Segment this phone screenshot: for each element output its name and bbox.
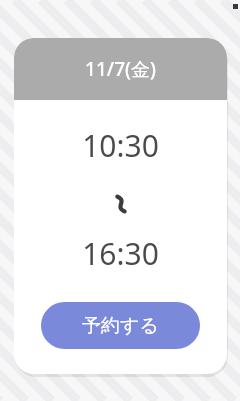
staticText: 16:30 bbox=[82, 233, 159, 274]
staticText: 11/7(金) bbox=[85, 56, 156, 82]
button[interactable]: 予約する bbox=[41, 302, 200, 349]
staticText: 予約する bbox=[82, 314, 159, 338]
staticText: 10:30 bbox=[82, 125, 159, 166]
